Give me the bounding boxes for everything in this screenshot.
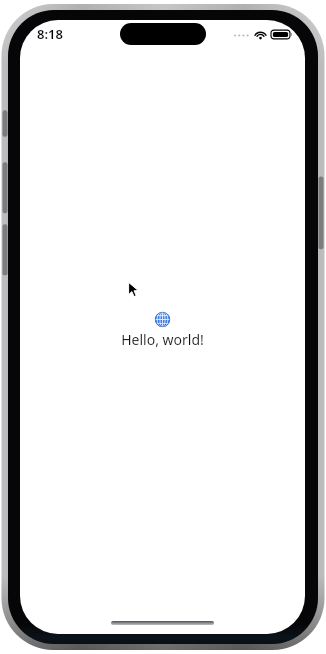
- other: Globe: [155, 312, 170, 327]
- staticText: 8:18: [37, 25, 63, 43]
- button[interactable]: Globe: [121, 312, 204, 349]
- staticText: Hello, world!: [121, 330, 204, 349]
